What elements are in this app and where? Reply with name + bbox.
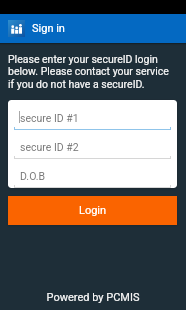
button[interactable]: secure ID #1 xyxy=(8,100,177,129)
staticText: Powered by PCMIS xyxy=(0,291,186,304)
button[interactable]: Login xyxy=(8,196,177,225)
staticText: Please enter your secureID login below. … xyxy=(8,53,173,91)
staticText: Login xyxy=(79,204,107,217)
button[interactable]: secure ID #2 xyxy=(8,129,177,158)
staticText: secure ID #1 xyxy=(20,112,79,124)
staticText: secure ID #2 xyxy=(20,141,79,153)
other: App logo xyxy=(8,20,25,37)
button[interactable]: D.O.B xyxy=(8,158,177,187)
staticText: Sign in xyxy=(32,22,65,35)
staticText: D.O.B xyxy=(20,170,46,182)
